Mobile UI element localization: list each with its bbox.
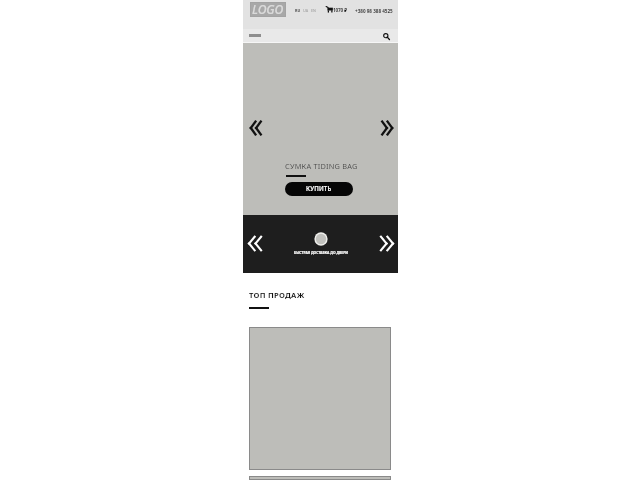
button[interactable]: +380 98 388 4525 bbox=[355, 8, 393, 14]
button[interactable]: Next benefit bbox=[374, 232, 397, 254]
staticText: 1070 ₽ bbox=[333, 7, 347, 13]
staticText: ТОП ПРОДАЖ bbox=[249, 290, 305, 300]
staticText: КУПИТЬ bbox=[306, 184, 332, 192]
button[interactable]: 1070 ₽ bbox=[326, 6, 347, 13]
button[interactable] bbox=[249, 476, 391, 480]
button[interactable]: Menu bbox=[245, 29, 267, 42]
button[interactable]: КУПИТЬ bbox=[285, 182, 353, 196]
button[interactable]: LOGO bbox=[250, 2, 286, 17]
button[interactable]: RU bbox=[295, 8, 301, 13]
button[interactable] bbox=[249, 327, 391, 470]
staticText: LOGO bbox=[252, 1, 284, 16]
button[interactable]: Previous slide bbox=[247, 118, 267, 138]
button[interactable]: EN bbox=[311, 8, 316, 13]
button[interactable]: UA bbox=[303, 8, 309, 13]
button[interactable]: Previous benefit bbox=[245, 232, 268, 254]
staticText: СУМКА TIDING BAG bbox=[285, 161, 358, 171]
staticText: БЫСТРАЯ ДОСТАВКА ДО ДВЕРИ bbox=[294, 250, 349, 255]
button[interactable]: Search bbox=[376, 30, 395, 43]
button[interactable]: Next slide bbox=[376, 118, 396, 138]
